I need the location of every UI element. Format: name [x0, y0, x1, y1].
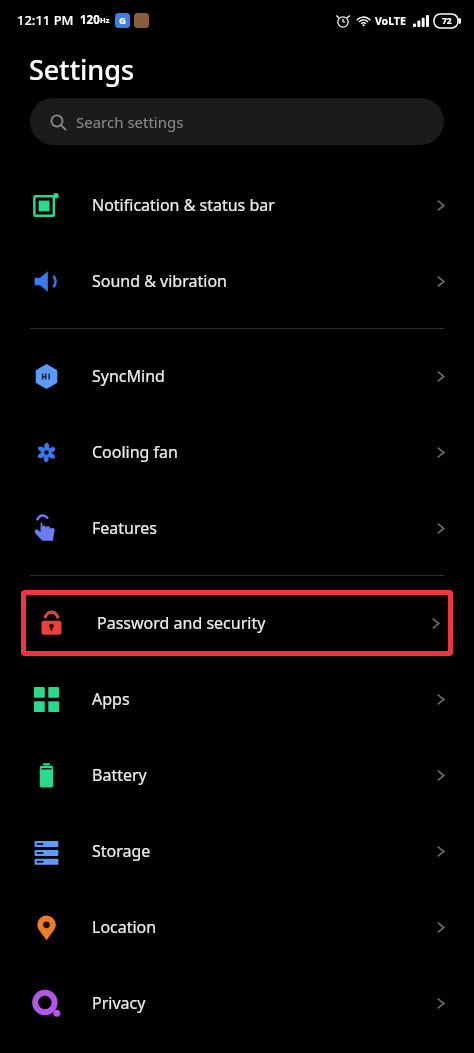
staticText: Cooling fan	[92, 441, 435, 463]
staticText: Apps	[92, 688, 435, 710]
button[interactable]: Notification & status bar	[0, 167, 474, 243]
staticText: Storage	[92, 840, 435, 862]
staticText: Sound & vibration	[92, 270, 435, 292]
staticText: G	[119, 14, 126, 27]
staticText: Location	[92, 916, 435, 938]
staticText: 120	[80, 12, 100, 28]
button[interactable]: SyncMind	[0, 338, 474, 414]
button[interactable]: Privacy	[0, 965, 474, 1041]
staticText: Settings	[29, 51, 135, 88]
button[interactable]: Location	[0, 889, 474, 965]
staticText: Hz	[100, 15, 110, 25]
button[interactable]: Features	[0, 490, 474, 566]
button[interactable]: Sound & vibration	[0, 243, 474, 319]
button[interactable]: Search settings	[30, 98, 444, 145]
staticText: Features	[92, 517, 435, 539]
staticText: 72	[442, 15, 452, 27]
button[interactable]: Battery	[0, 737, 474, 813]
staticText: Password and security	[97, 612, 430, 634]
staticText: SyncMind	[92, 365, 435, 387]
button[interactable]: Apps	[0, 661, 474, 737]
staticText: Search settings	[76, 112, 184, 132]
staticText: Battery	[92, 764, 435, 786]
staticText: VoLTE	[375, 14, 406, 28]
button[interactable]: Storage	[0, 813, 474, 889]
button[interactable]: Cooling fan	[0, 414, 474, 490]
staticText: Privacy	[92, 992, 435, 1014]
staticText: Notification & status bar	[92, 194, 435, 216]
button[interactable]: Password and security	[26, 595, 448, 651]
staticText: 12:11 PM	[17, 11, 74, 29]
